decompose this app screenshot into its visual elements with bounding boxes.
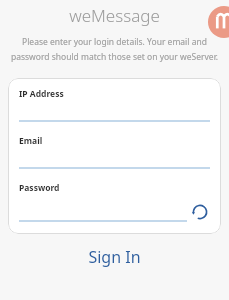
staticText: Email bbox=[19, 135, 43, 147]
staticText: Sign In bbox=[88, 246, 141, 268]
button[interactable]: Email bbox=[19, 135, 210, 169]
button[interactable]: Sign In bbox=[0, 246, 229, 268]
button[interactable]: IP Address bbox=[19, 88, 210, 122]
staticText: weMessage bbox=[0, 4, 229, 27]
button[interactable]: Password bbox=[19, 182, 60, 194]
staticText: Please enter your login details. Your em… bbox=[7, 36, 222, 62]
button[interactable]: Refresh bbox=[190, 202, 210, 222]
staticText: IP Address bbox=[19, 88, 64, 100]
